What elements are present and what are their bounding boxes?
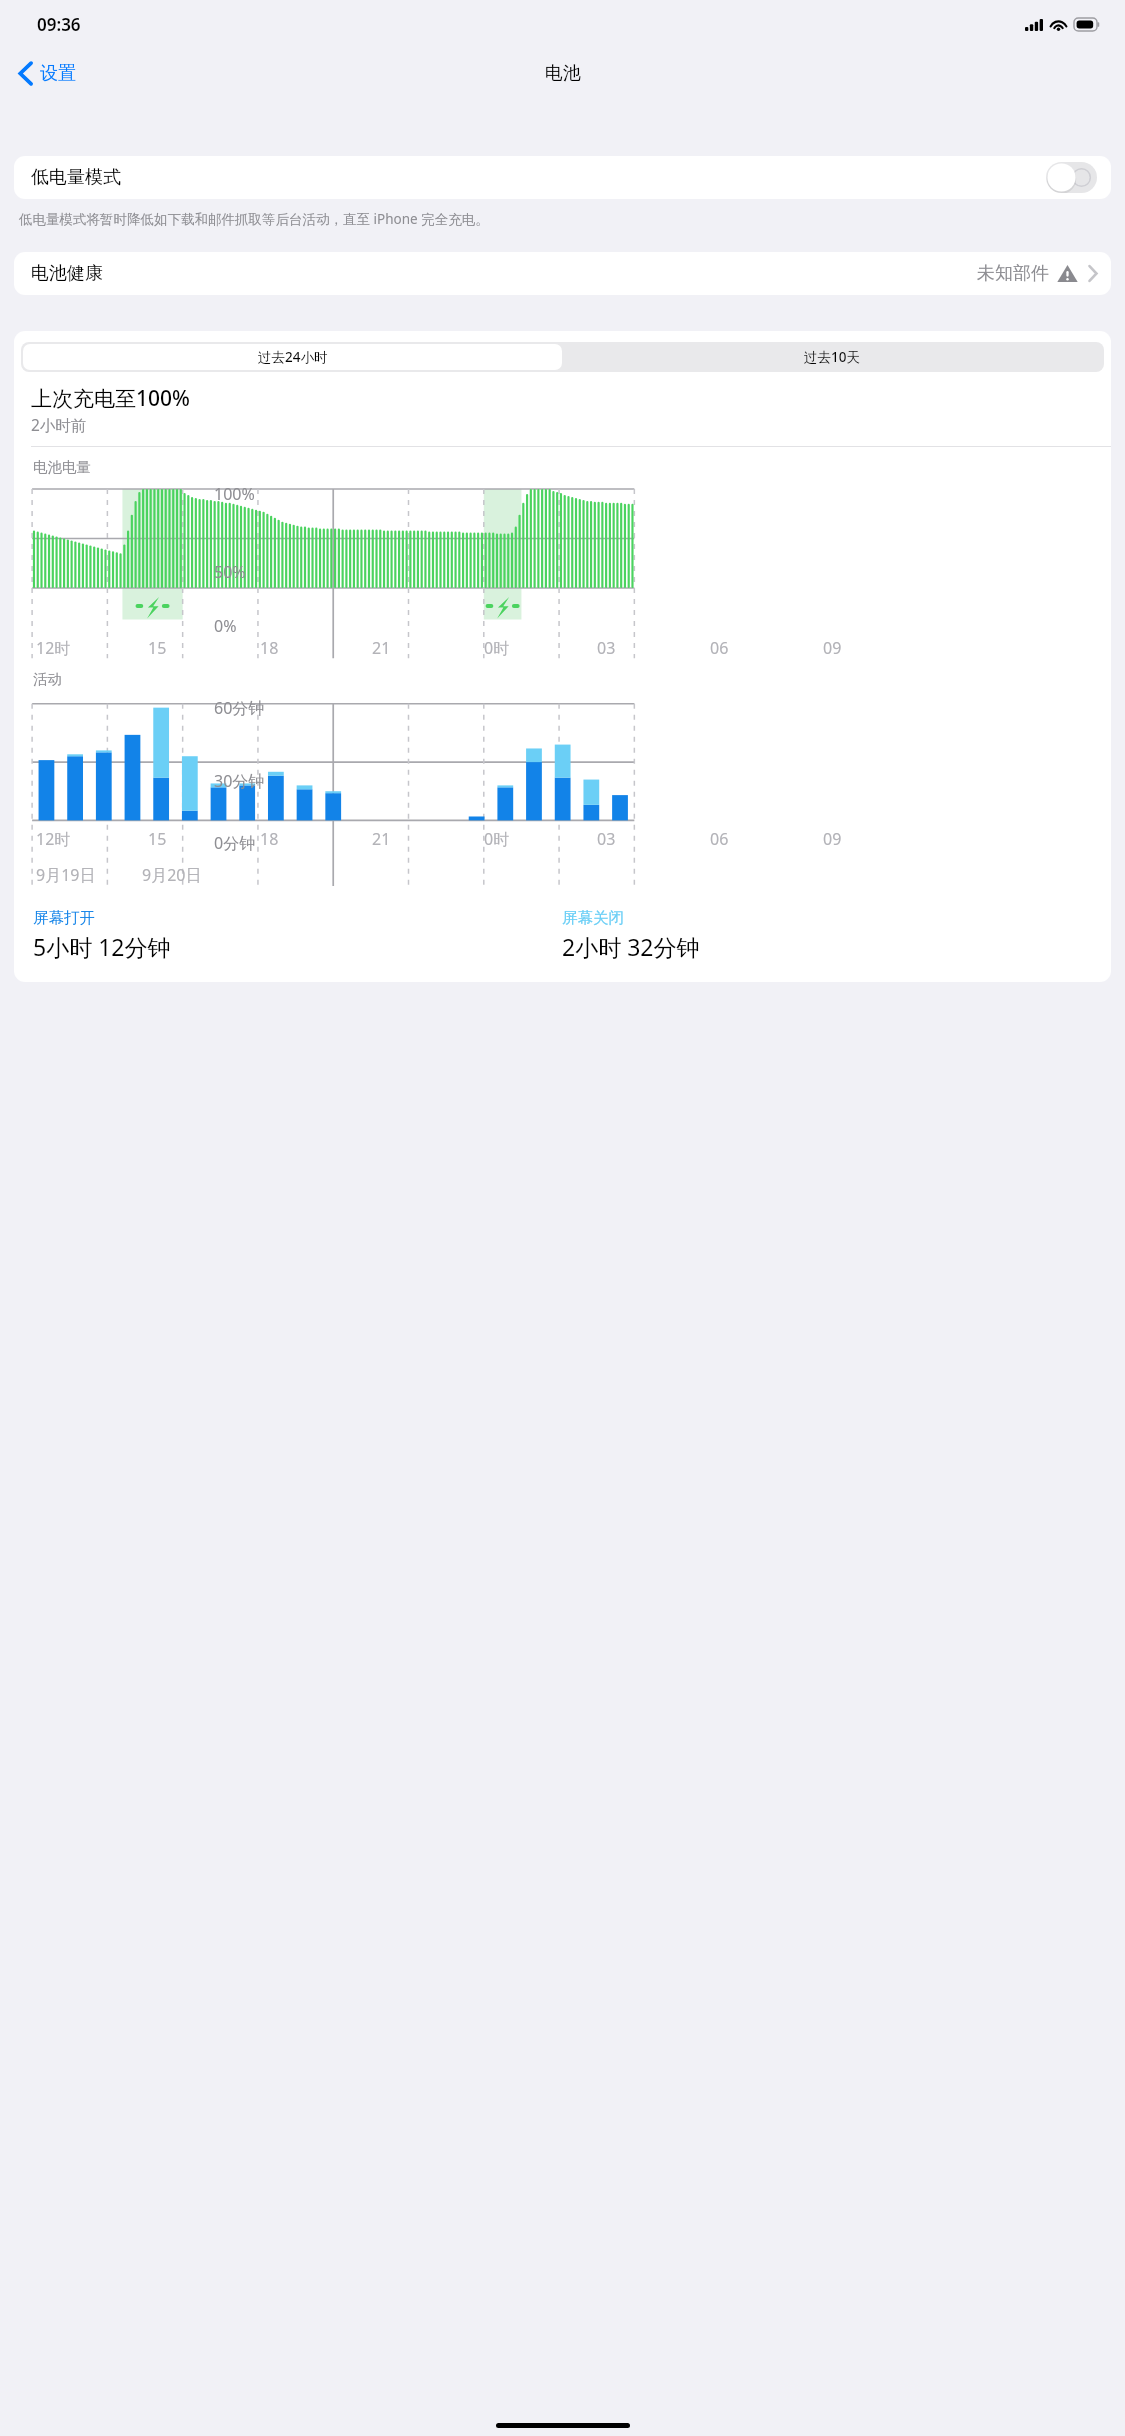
staticText: 18 [260, 637, 279, 659]
staticText: 100% [214, 483, 255, 505]
staticText: 09 [823, 828, 842, 850]
staticText: 30分钟 [214, 770, 265, 792]
staticText: 15 [148, 637, 167, 659]
staticText: 9月20日 [142, 864, 202, 886]
staticText: 屏幕打开 [33, 908, 95, 928]
staticText: 15 [148, 828, 167, 850]
staticText: 活动 [33, 670, 62, 688]
staticText: 0时 [484, 828, 510, 850]
staticText: 60分钟 [214, 697, 265, 719]
staticText: 电池电量 [33, 458, 91, 476]
staticText: 12时 [36, 637, 71, 659]
staticText: 06 [710, 828, 729, 850]
staticText: 09:36 [37, 13, 81, 36]
staticText: 0% [214, 615, 237, 637]
staticText: 21 [372, 637, 391, 659]
staticText: 电池 [545, 62, 581, 85]
staticText: 2小时前 [31, 414, 87, 435]
staticText: 低电量模式将暂时降低如下载和邮件抓取等后台活动，直至 iPhone 完全充电。 [19, 210, 1106, 228]
staticText: 18 [260, 828, 279, 850]
button[interactable]: 低电量模式 [14, 156, 1111, 199]
staticText: 0时 [484, 637, 510, 659]
staticText: 上次充电至100% [31, 384, 190, 413]
staticText: 未知部件 [977, 262, 1049, 285]
button[interactable]: 过去24小时 [23, 344, 562, 370]
staticText: 低电量模式 [31, 166, 121, 189]
staticText: 5小时 12分钟 [33, 931, 171, 962]
staticText: 21 [372, 828, 391, 850]
staticText: 0分钟 [214, 832, 256, 854]
staticText: 过去24小时 [258, 348, 328, 366]
staticText: 03 [597, 828, 616, 850]
button[interactable]: 过去10天 [562, 344, 1102, 370]
staticText: 50% [214, 561, 246, 583]
staticText: 屏幕关闭 [562, 908, 624, 928]
staticText: 09 [823, 637, 842, 659]
button[interactable]: 低电量模式开关 [1046, 162, 1097, 193]
staticText: 03 [597, 637, 616, 659]
staticText: 9月19日 [36, 864, 96, 886]
staticText: 电池健康 [31, 262, 103, 285]
staticText: 2小时 32分钟 [562, 931, 700, 962]
staticText: 12时 [36, 828, 71, 850]
staticText: 过去10天 [804, 348, 860, 366]
staticText: 06 [710, 637, 729, 659]
button[interactable]: 设置 [13, 57, 82, 90]
button[interactable]: 电池健康 [14, 252, 1111, 295]
staticText: 设置 [40, 62, 76, 85]
